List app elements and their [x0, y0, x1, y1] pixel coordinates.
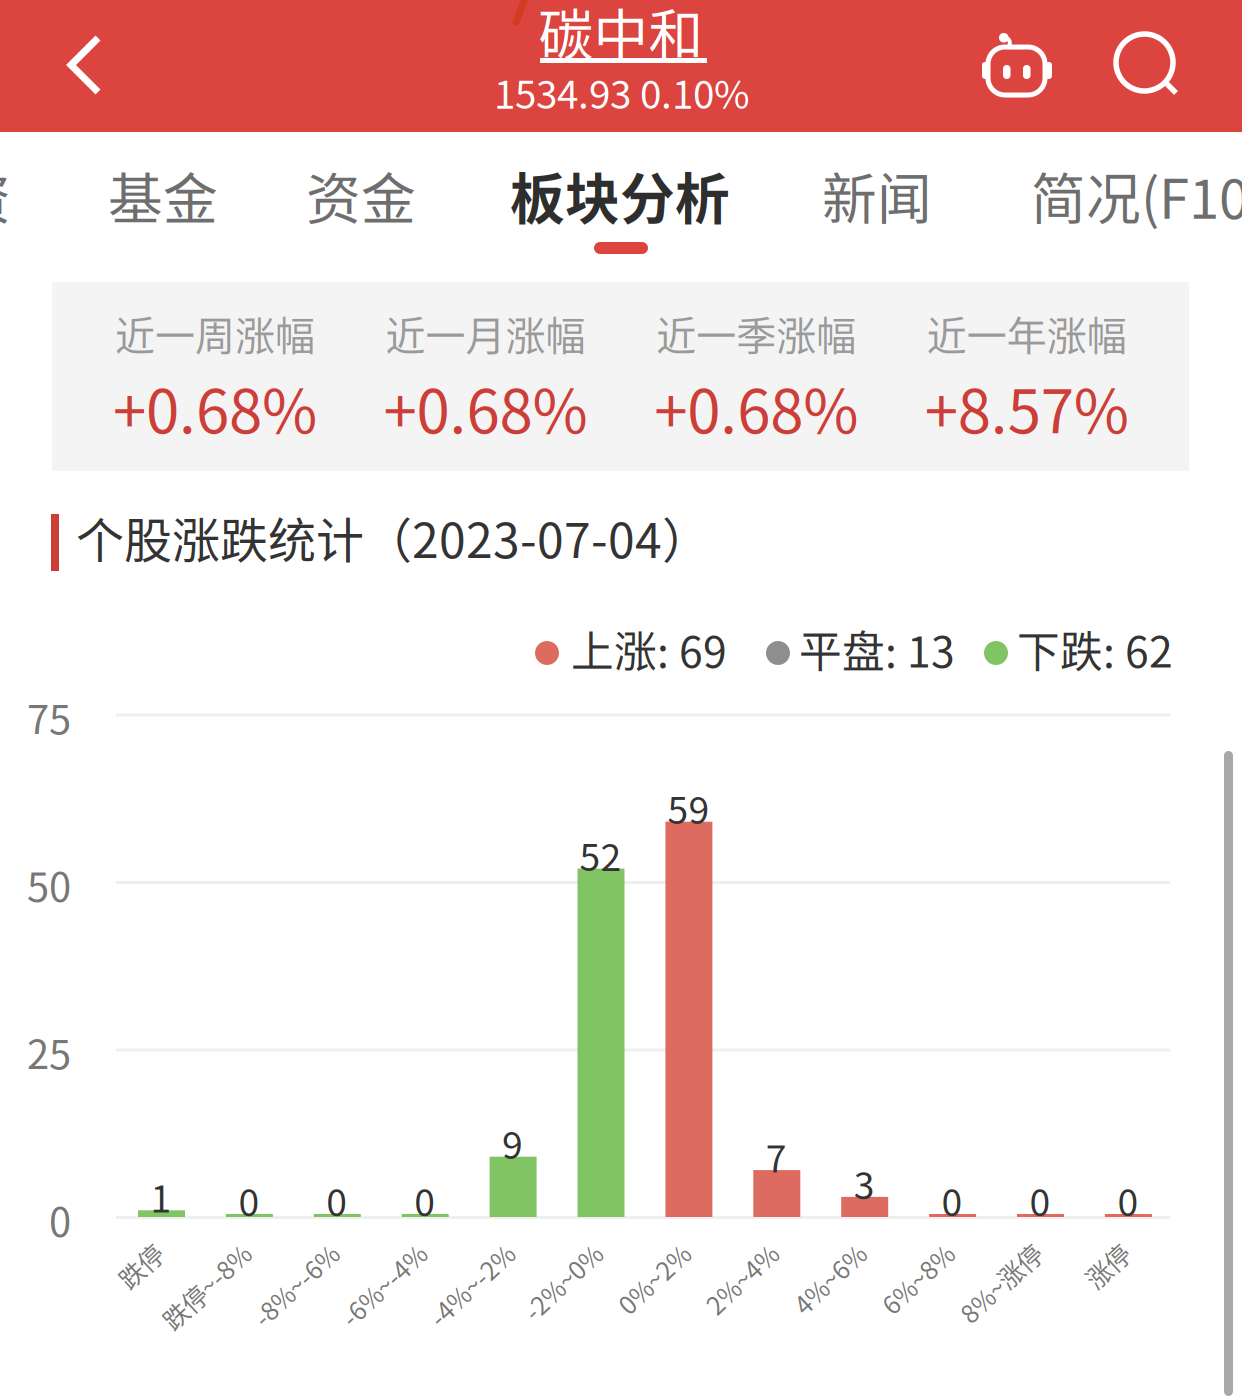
staticText: -2%~0%: [487, 1236, 584, 1272]
staticText: 6%~8%: [848, 1236, 936, 1272]
staticText: 板块分析: [510, 155, 730, 235]
staticText: 0: [1029, 1173, 1050, 1227]
staticText: 跌停~-8%: [123, 1236, 233, 1272]
staticText: 52: [579, 828, 621, 882]
staticText: +0.68%: [113, 364, 317, 450]
button[interactable]: 资金: [306, 136, 456, 254]
staticText: 0: [238, 1173, 259, 1227]
staticText: 7: [766, 1129, 787, 1183]
button[interactable]: 简况(F10): [1031, 136, 1242, 254]
staticText: 0%~2%: [584, 1236, 672, 1272]
staticText: 8%~涨停: [923, 1236, 1024, 1272]
staticText: 25: [27, 1022, 71, 1080]
staticText: 0: [942, 1173, 963, 1227]
staticText: 碳中和: [538, 0, 703, 71]
staticText: 涨停: [1062, 1236, 1112, 1272]
staticText: 基金: [108, 155, 218, 235]
staticText: 平盘: 13: [799, 618, 955, 680]
staticText: 上涨: 69: [571, 618, 727, 680]
staticText: +0.68%: [654, 364, 858, 450]
staticText: 近一月涨幅: [386, 304, 586, 362]
staticText: 近一周涨幅: [115, 304, 315, 362]
staticText: 简况(F10): [1031, 155, 1242, 235]
staticText: 4%~6%: [760, 1236, 848, 1272]
staticText: +8.57%: [925, 364, 1129, 450]
staticText: 跌停: [95, 1236, 145, 1272]
staticText: 0: [326, 1173, 347, 1227]
button[interactable]: 新闻: [822, 136, 972, 254]
staticText: 1534.93 0.10%: [494, 64, 750, 120]
staticText: -4%~-2%: [391, 1236, 497, 1272]
staticText: 近一年涨幅: [927, 304, 1127, 362]
staticText: 59: [667, 781, 709, 835]
staticText: -8%~-6%: [215, 1236, 321, 1272]
staticText: 75: [27, 687, 71, 745]
staticText: 50: [27, 855, 71, 913]
button[interactable]: Assistant: [0, 0, 70, 63]
staticText: 0: [1117, 1173, 1138, 1227]
staticText: 下跌: 62: [1017, 618, 1173, 680]
staticText: 资: [0, 155, 11, 235]
staticText: 0: [414, 1173, 435, 1227]
staticText: 新闻: [822, 155, 932, 235]
staticText: 个股涨跌统计（2023-07-04）: [76, 502, 710, 572]
staticText: 3: [854, 1156, 875, 1210]
button[interactable]: 基金: [108, 136, 258, 254]
button[interactable]: 资: [0, 136, 56, 254]
staticText: 资金: [306, 155, 416, 235]
staticText: 0: [49, 1190, 71, 1248]
staticText: -6%~-4%: [303, 1236, 409, 1272]
button[interactable]: 板块分析: [510, 136, 732, 254]
staticText: +0.68%: [384, 364, 588, 450]
staticText: 9: [502, 1116, 523, 1170]
staticText: 1: [150, 1169, 171, 1223]
button[interactable]: Back: [0, 0, 110, 112]
staticText: 近一季涨幅: [656, 304, 856, 362]
staticText: 2%~4%: [672, 1236, 760, 1272]
